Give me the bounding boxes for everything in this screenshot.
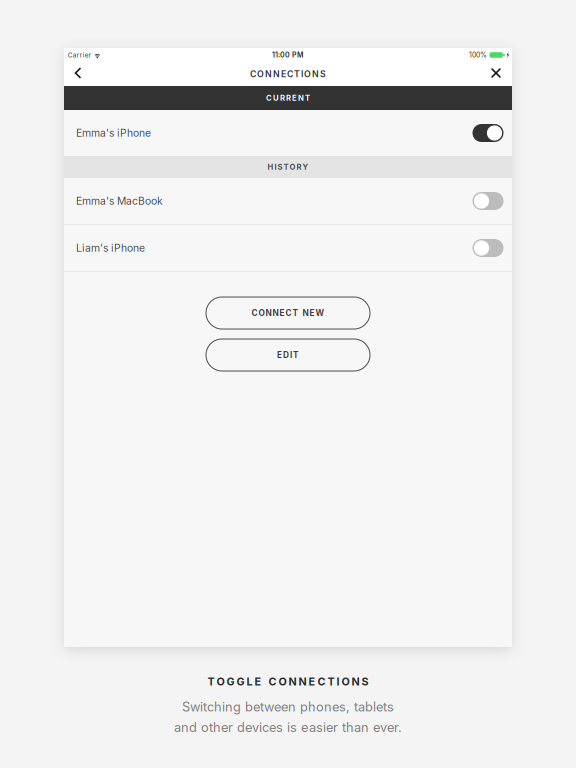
- staticText: and other devices is easier than ever.: [174, 720, 402, 735]
- staticText: Emma's iPhone: [76, 127, 151, 139]
- staticText: E D I T: [277, 350, 299, 360]
- staticText: H I S T O R Y: [267, 162, 308, 172]
- staticText: Liam's iPhone: [76, 242, 145, 254]
- staticText: C O N N E C T N E W: [251, 308, 324, 318]
- button[interactable]: E D I T: [206, 339, 370, 371]
- staticText: Emma's MacBook: [76, 195, 163, 207]
- button[interactable]: C O N N E C T N E W: [206, 297, 370, 329]
- staticText: C U R R E N T: [266, 93, 310, 103]
- button[interactable]: Close: [483, 62, 509, 84]
- button[interactable]: Liam's iPhone: [64, 225, 512, 271]
- staticText: T O G G L E C O N N E C T I O N S: [207, 675, 368, 688]
- staticText: Carrier: [68, 51, 91, 59]
- button[interactable]: Back: [65, 62, 91, 84]
- staticText: 100%: [469, 51, 487, 59]
- button[interactable]: Emma's MacBook: [64, 178, 512, 224]
- staticText: Switching between phones, tablets: [182, 699, 394, 715]
- staticText: C O N N E C T I O N S: [250, 69, 326, 79]
- staticText: 11:00 PM: [272, 51, 304, 59]
- button[interactable]: Emma's iPhone: [64, 110, 512, 156]
